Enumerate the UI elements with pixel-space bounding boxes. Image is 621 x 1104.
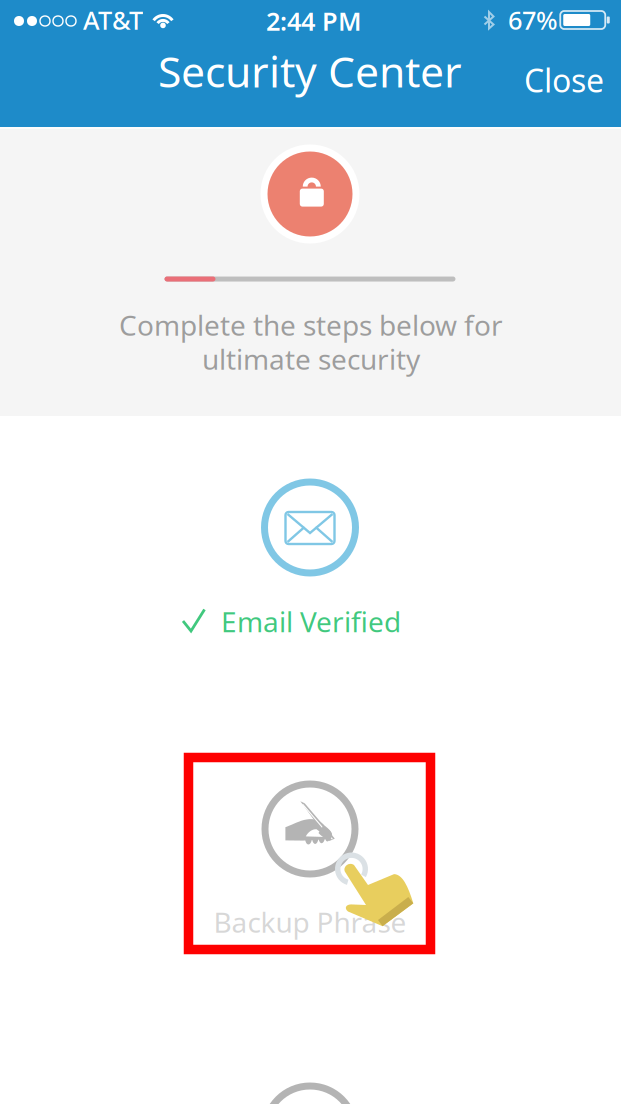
staticText: Complete the steps below for [119, 306, 503, 344]
button[interactable]: Close [503, 43, 621, 117]
staticText: 67% [508, 3, 558, 37]
staticText: AT&T [83, 3, 143, 37]
staticText: Security Center [158, 43, 462, 99]
button[interactable]: Email Verified [0, 478, 621, 653]
staticText: Close [524, 59, 604, 101]
staticText: Backup Phrase [213, 903, 406, 941]
button[interactable]: Backup Phrase [0, 780, 621, 960]
staticText: Email Verified [221, 603, 401, 640]
staticText: 2:44 PM [266, 4, 362, 38]
staticText: ultimate security [202, 340, 420, 378]
